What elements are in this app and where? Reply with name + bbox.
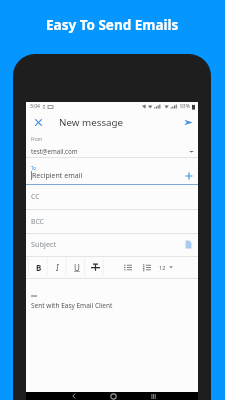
staticText: 12 [159,264,166,271]
button[interactable]: 12 [156,256,175,278]
staticText: From [31,136,43,142]
button[interactable]: B [29,256,48,278]
button[interactable]: Close [30,114,47,131]
staticText: 3:04 [30,103,40,110]
button[interactable]: Back [62,392,85,400]
staticText: Subject [31,239,57,249]
staticText: Sent with Easy Email Client [31,301,113,310]
button[interactable]: Strikethrough [86,256,105,278]
button[interactable]: Send [180,114,197,131]
staticText: New message [59,116,124,129]
button[interactable]: From [26,133,198,157]
button[interactable]: Recent apps [142,392,165,400]
button[interactable]: Attach file [183,239,194,250]
button[interactable]: Numbered list [137,256,156,278]
staticText: test@email.com [31,147,78,155]
button[interactable]: BCC [26,209,198,233]
button[interactable]: Add recipient [183,170,194,181]
staticText: B [36,262,42,273]
button[interactable]: Home [102,392,125,400]
button[interactable]: I [48,256,67,278]
button[interactable]: Bulleted list [118,256,137,278]
button[interactable]: Subject [26,233,198,255]
staticText: To [31,165,36,171]
button[interactable]: U [67,256,86,278]
staticText: 93% [180,103,190,110]
button[interactable]: CC [26,185,198,208]
staticText: U [74,262,80,273]
staticText: BCC [31,217,44,226]
button[interactable]: To [26,157,198,184]
staticText: Easy To Send Emails [46,16,179,34]
staticText: CC [31,192,40,201]
staticText: Recipient email [32,171,83,181]
staticText: I [56,262,59,273]
